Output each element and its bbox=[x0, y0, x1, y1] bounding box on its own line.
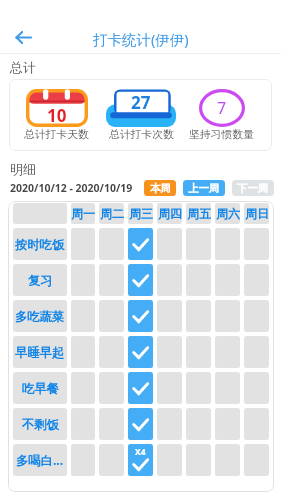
button[interactable]: 周四 bbox=[157, 203, 182, 224]
staticText: 27 bbox=[131, 91, 151, 114]
button[interactable] bbox=[128, 264, 153, 296]
staticText: 周日 bbox=[245, 206, 269, 221]
button[interactable]: 周一 bbox=[71, 203, 95, 224]
staticText: 本周 bbox=[150, 182, 171, 195]
staticText: 按时吃饭 bbox=[15, 237, 65, 252]
staticText: 7 bbox=[217, 97, 227, 119]
staticText: 不剩饭 bbox=[22, 417, 59, 432]
staticText: 明细 bbox=[10, 161, 36, 177]
button[interactable]: 按时吃饭 bbox=[13, 228, 67, 260]
button[interactable]: 早睡早起 bbox=[13, 336, 67, 368]
button[interactable] bbox=[128, 300, 153, 332]
button[interactable]: 不剩饭 bbox=[13, 408, 67, 440]
staticText: 2020/10/12 - 2020/10/19 bbox=[10, 181, 133, 195]
staticText: X4 bbox=[135, 446, 146, 458]
staticText: 周三 bbox=[129, 206, 153, 221]
staticText: 周一 bbox=[71, 206, 95, 221]
staticText: 10 bbox=[47, 104, 67, 127]
staticText: 周六 bbox=[216, 206, 240, 221]
button[interactable]: X4 bbox=[128, 444, 153, 476]
staticText: 周五 bbox=[187, 206, 211, 221]
button[interactable]: 吃早餐 bbox=[13, 372, 67, 404]
staticText: 总计打卡次数 bbox=[109, 128, 174, 142]
button[interactable]: 多吃蔬菜 bbox=[13, 300, 67, 332]
staticText: 早睡早起 bbox=[15, 345, 65, 360]
staticText: 总计 bbox=[10, 59, 36, 75]
button[interactable]: 上一周 bbox=[183, 180, 225, 196]
button[interactable]: 复习 bbox=[13, 264, 67, 296]
staticText: 周四 bbox=[158, 206, 182, 221]
staticText: 多吃蔬菜 bbox=[15, 309, 65, 324]
button[interactable]: 周三 bbox=[128, 203, 153, 224]
staticText: 周二 bbox=[100, 206, 124, 221]
button[interactable]: 周日 bbox=[244, 203, 269, 224]
staticText: 下一周 bbox=[237, 182, 269, 195]
button[interactable] bbox=[128, 228, 153, 260]
staticText: 复习 bbox=[28, 273, 53, 288]
button[interactable]: 周五 bbox=[186, 203, 211, 224]
staticText: 坚持习惯数量 bbox=[189, 128, 254, 142]
staticText: 多喝白... bbox=[16, 452, 64, 469]
button[interactable] bbox=[128, 336, 153, 368]
button[interactable] bbox=[128, 372, 153, 404]
button[interactable]: 多喝白... bbox=[13, 444, 67, 476]
staticText: 吃早餐 bbox=[22, 381, 59, 396]
button[interactable] bbox=[128, 408, 153, 440]
button[interactable]: 下一周 bbox=[232, 180, 274, 196]
staticText: 打卡统计(伊伊) bbox=[93, 29, 189, 49]
staticText: 上一周 bbox=[188, 182, 220, 195]
button[interactable]: 本周 bbox=[144, 180, 176, 196]
staticText: 总计打卡天数 bbox=[24, 128, 89, 142]
button[interactable]: Back bbox=[12, 26, 35, 49]
button[interactable]: 周六 bbox=[215, 203, 240, 224]
button[interactable]: 周二 bbox=[99, 203, 124, 224]
